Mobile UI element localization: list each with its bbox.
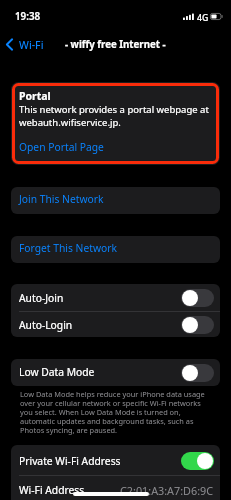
staticText: Private Wi-Fi Address [19, 454, 121, 468]
button[interactable]: Wi-Fi [2, 33, 50, 55]
staticText: Forget This Network [19, 241, 118, 255]
button[interactable]: Toggle off [181, 364, 214, 382]
button[interactable]: Toggle on [181, 452, 214, 470]
button[interactable]: Open Portal Page [19, 140, 104, 154]
staticText: Join This Network [19, 192, 104, 206]
button[interactable]: Wi-Fi Address [11, 475, 220, 500]
button[interactable]: Toggle off [181, 316, 214, 334]
staticText: 19:38 [15, 10, 41, 23]
staticText: Auto-Login [19, 318, 73, 332]
staticText: Low Data Mode [19, 365, 95, 379]
button[interactable]: Forget This Network [11, 236, 220, 263]
staticText: - wiffy free Internet - [65, 38, 166, 51]
button[interactable]: Auto-Login [11, 311, 220, 337]
button[interactable]: Auto-Join [11, 284, 220, 311]
staticText: Wi-Fi [19, 38, 44, 52]
staticText: Portal [19, 89, 51, 103]
button[interactable]: Low Data Mode [11, 359, 220, 386]
button[interactable]: Private Wi-Fi Address [11, 445, 220, 475]
button[interactable]: Toggle off [181, 289, 214, 307]
staticText: 4G [197, 12, 209, 24]
staticText: C2:01:A3:A7:D6:9C [120, 483, 214, 498]
staticText: Low Data Mode helps reduce your iPhone d… [20, 389, 209, 435]
staticText: Wi-Fi Address [19, 483, 85, 497]
staticText: Auto-Join [19, 291, 64, 305]
staticText: This network provides a portal webpage a… [19, 103, 213, 129]
button[interactable]: Join This Network [11, 187, 220, 214]
